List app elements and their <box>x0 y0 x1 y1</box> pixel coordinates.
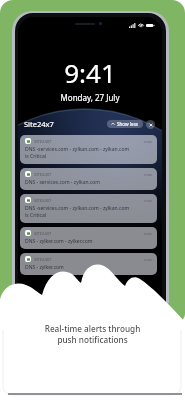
staticText: Show less <box>117 121 139 127</box>
staticText: Site24x7 <box>24 119 54 129</box>
button[interactable]: SITE24X7 <box>20 253 157 275</box>
staticText: 9:41 <box>18 55 162 90</box>
staticText: is Critical <box>25 153 47 160</box>
button[interactable]: Clear all notifications <box>146 120 155 129</box>
staticText: DNS - zylker.com - zylker.com <box>25 238 93 245</box>
staticText: now <box>144 139 152 144</box>
staticText: SITE24X7 <box>34 172 52 177</box>
button[interactable]: SITE24X7 <box>20 168 157 190</box>
staticText: now <box>144 257 152 262</box>
staticText: DNS - zylker.com <box>25 264 64 271</box>
staticText: Real-time alerts through push notificati… <box>0 323 185 345</box>
staticText: now <box>144 231 152 236</box>
button[interactable]: SITE24X7 <box>20 194 157 223</box>
staticText: DNS -services.com - zylkan.com - zylkan.… <box>25 205 130 212</box>
staticText: now <box>144 198 152 203</box>
staticText: SITE24X7 <box>34 231 52 236</box>
button[interactable]: SITE24X7 <box>20 135 157 164</box>
staticText: now <box>144 172 152 177</box>
staticText: SITE24X7 <box>34 257 52 262</box>
staticText: Monday, 27 July <box>18 92 162 103</box>
staticText: DNS - services.com - zylkan.com <box>25 179 100 186</box>
staticText: SITE24X7 <box>34 198 52 203</box>
staticText: is Critical <box>25 212 47 219</box>
button[interactable]: Show less <box>107 120 143 128</box>
button[interactable]: SITE24X7 <box>20 227 157 249</box>
staticText: SITE24X7 <box>34 139 52 144</box>
staticText: DNS -services.com - zylkan.com - zylkan.… <box>25 146 130 153</box>
